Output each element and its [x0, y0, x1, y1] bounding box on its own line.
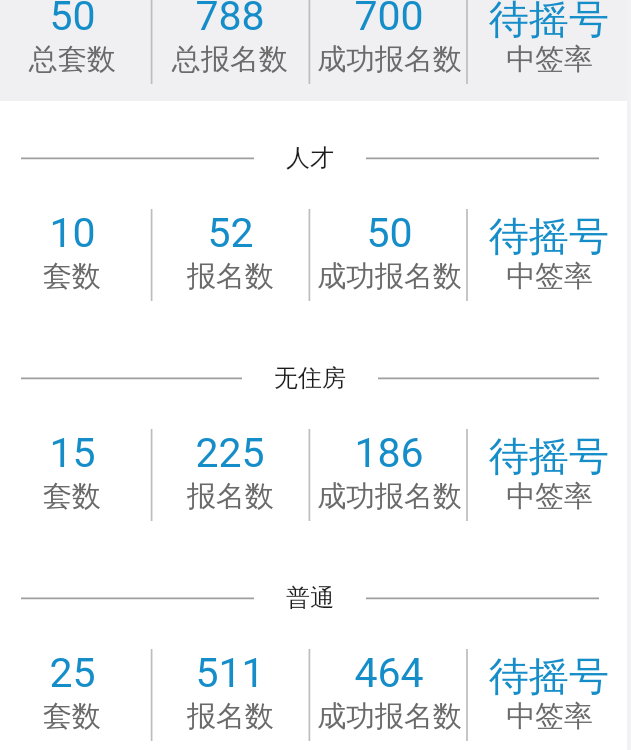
- staticText: 中签率: [506, 258, 593, 295]
- button[interactable]: 无住房: [0, 356, 631, 400]
- button[interactable]: 225: [151, 377, 309, 522]
- button[interactable]: 人才: [0, 136, 631, 180]
- staticText: 待摇号: [489, 651, 609, 701]
- staticText: 中签率: [506, 698, 593, 735]
- staticText: 52: [207, 209, 254, 257]
- staticText: 人才: [286, 143, 334, 173]
- button[interactable]: 待摇号: [467, 597, 631, 742]
- staticText: 待摇号: [489, 431, 609, 481]
- staticText: 186: [354, 429, 424, 477]
- staticText: 464: [354, 649, 424, 697]
- button[interactable]: 25: [0, 597, 148, 742]
- staticText: 报名数: [187, 258, 274, 295]
- button[interactable]: 普通: [0, 576, 631, 620]
- staticText: 无住房: [274, 363, 346, 393]
- staticText: 中签率: [506, 478, 593, 515]
- staticText: 普通: [286, 583, 334, 613]
- staticText: 报名数: [187, 478, 274, 515]
- button[interactable]: 待摇号: [467, 157, 631, 302]
- staticText: 套数: [43, 478, 101, 515]
- staticText: 总报名数: [172, 41, 288, 78]
- button[interactable]: 待摇号: [467, 0, 631, 85]
- staticText: 511: [195, 649, 265, 697]
- staticText: 待摇号: [489, 0, 609, 44]
- staticText: 成功报名数: [317, 698, 462, 735]
- staticText: 成功报名数: [317, 41, 462, 78]
- button[interactable]: 700: [310, 0, 468, 85]
- button[interactable]: 50: [0, 0, 148, 85]
- staticText: 50: [366, 209, 413, 257]
- button[interactable]: 待摇号: [467, 377, 631, 522]
- button[interactable]: 186: [310, 377, 468, 522]
- button[interactable]: 10: [0, 157, 148, 302]
- staticText: 788: [195, 0, 265, 40]
- button[interactable]: 15: [0, 377, 148, 522]
- staticText: 成功报名数: [317, 478, 462, 515]
- button[interactable]: 788: [151, 0, 309, 85]
- staticText: 10: [49, 209, 96, 257]
- staticText: 报名数: [187, 698, 274, 735]
- staticText: 套数: [43, 258, 101, 295]
- staticText: 中签率: [506, 41, 593, 78]
- staticText: 成功报名数: [317, 258, 462, 295]
- staticText: 15: [49, 429, 96, 477]
- staticText: 待摇号: [489, 211, 609, 261]
- staticText: 50: [49, 0, 96, 40]
- button[interactable]: 511: [151, 597, 309, 742]
- button[interactable]: 464: [310, 597, 468, 742]
- button[interactable]: 50: [310, 157, 468, 302]
- staticText: 225: [195, 429, 265, 477]
- staticText: 25: [49, 649, 96, 697]
- staticText: 700: [354, 0, 424, 40]
- button[interactable]: 52: [151, 157, 309, 302]
- staticText: 总套数: [29, 41, 116, 78]
- staticText: 套数: [43, 698, 101, 735]
